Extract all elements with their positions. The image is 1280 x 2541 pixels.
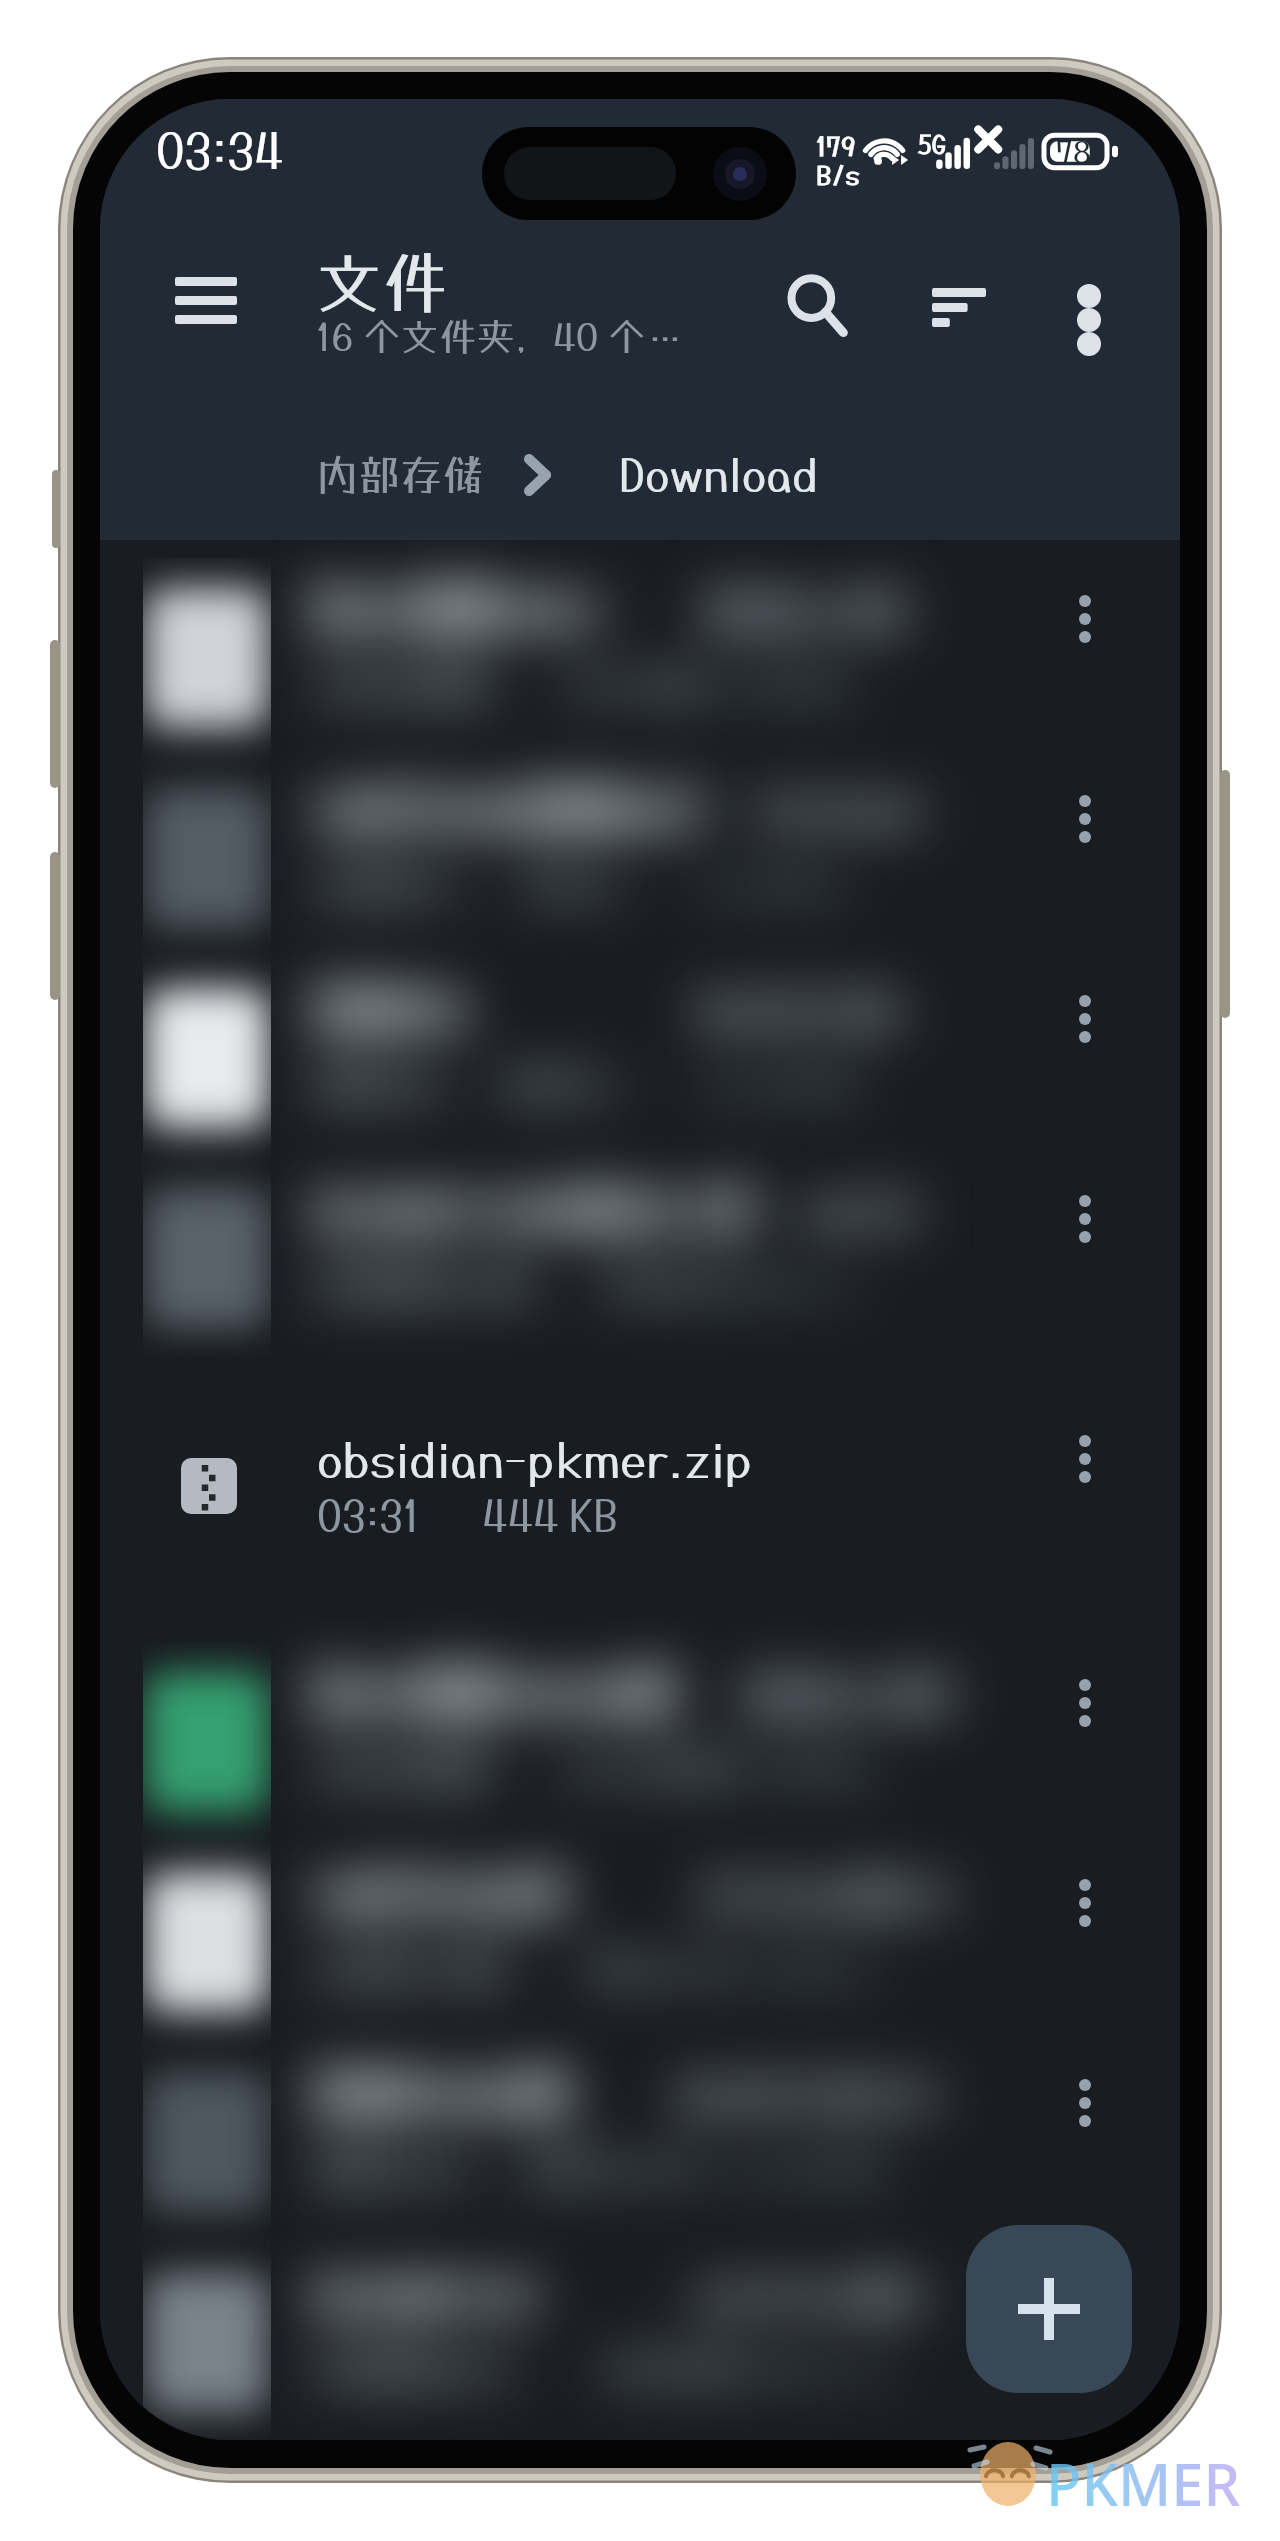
staticText: obsidian-pkmer.zip — [317, 1432, 752, 1487]
button[interactable]: More options — [1043, 577, 1127, 661]
staticText: Download — [619, 448, 819, 501]
button[interactable]: Download — [619, 448, 819, 501]
button[interactable]: More options — [1039, 260, 1139, 360]
staticText: 5G — [918, 129, 947, 158]
staticText: 78 — [1056, 134, 1091, 169]
button[interactable]: Sort — [909, 257, 1009, 357]
button[interactable]: More options — [1043, 1177, 1127, 1261]
staticText: 179 — [816, 130, 856, 161]
staticText: PKMER — [1046, 2444, 1241, 2523]
button[interactable]: Create new — [966, 2225, 1132, 2393]
staticText: 文件 — [316, 243, 448, 321]
staticText: 444 KB — [482, 1491, 619, 1541]
button[interactable]: More options — [1043, 2261, 1127, 2345]
button[interactable]: More options — [1043, 977, 1127, 1061]
staticText: 16 个文件夹，40 个… — [316, 314, 684, 359]
button[interactable]: More options — [1043, 2061, 1127, 2145]
button[interactable]: More options — [1043, 1661, 1127, 1745]
staticText: 03:31 — [317, 1491, 420, 1541]
button[interactable]: More options — [1043, 777, 1127, 861]
button[interactable]: Open navigation drawer — [158, 252, 254, 348]
button[interactable]: More options — [1043, 1861, 1127, 1945]
staticText: B/s — [816, 159, 860, 190]
button[interactable]: More options — [1043, 1417, 1127, 1501]
button[interactable]: 内部存储 — [316, 450, 485, 500]
button[interactable]: Search — [769, 257, 869, 357]
staticText: 03:34 — [156, 122, 284, 179]
button[interactable]: obsidian-pkmer.zip — [100, 1386, 1180, 1586]
staticText: 内部存储 — [316, 450, 485, 500]
